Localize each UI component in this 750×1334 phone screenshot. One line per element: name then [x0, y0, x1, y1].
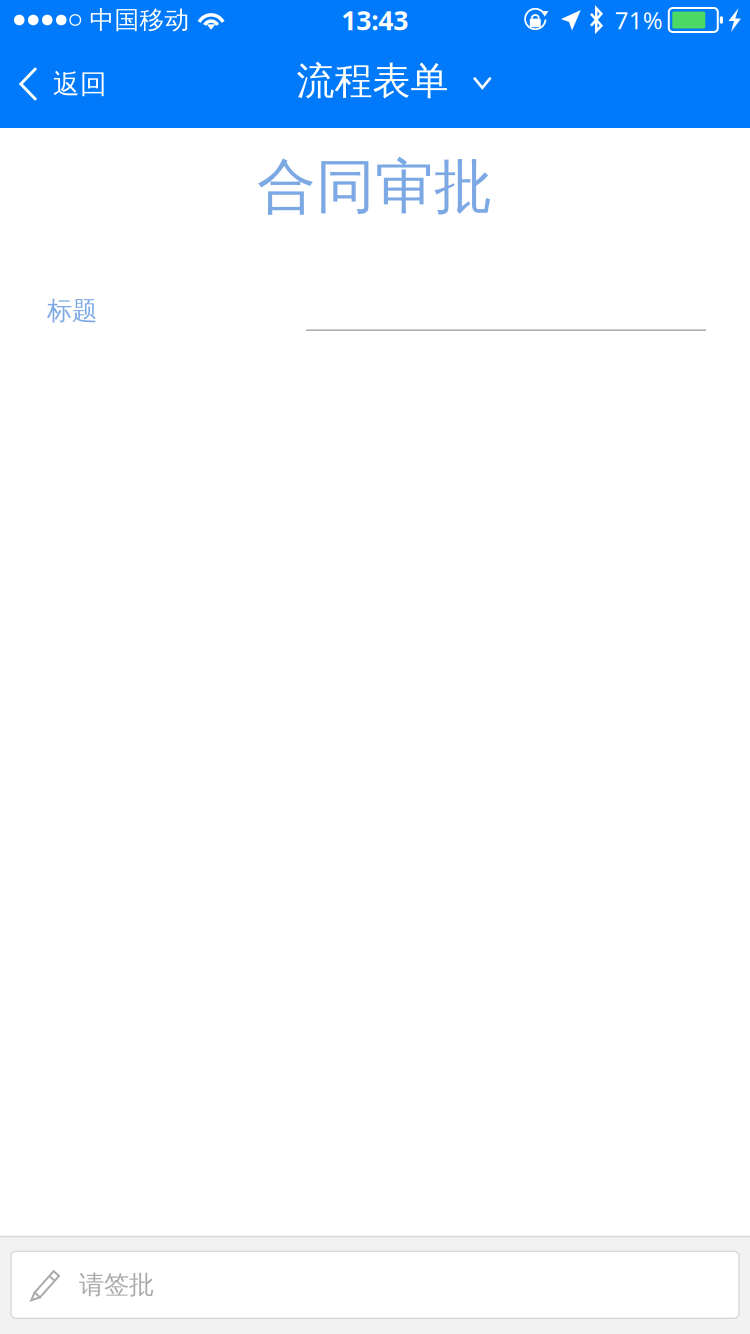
staticText: 合同审批 — [257, 150, 493, 224]
staticText: 返回 — [53, 67, 107, 101]
button[interactable]: 请签批 — [11, 1251, 739, 1318]
button[interactable]: 返回 — [0, 40, 121, 128]
staticText: 中国移动 — [89, 4, 189, 36]
staticText: 标题 — [47, 295, 97, 327]
staticText: 13:43 — [341, 2, 408, 38]
staticText: 请签批 — [79, 1269, 154, 1301]
button[interactable]: 标题 — [0, 291, 750, 331]
staticText: 流程表单 — [296, 57, 448, 105]
staticText: 71% — [615, 4, 663, 36]
button[interactable]: 流程表单，选择表单 — [257, 40, 492, 128]
